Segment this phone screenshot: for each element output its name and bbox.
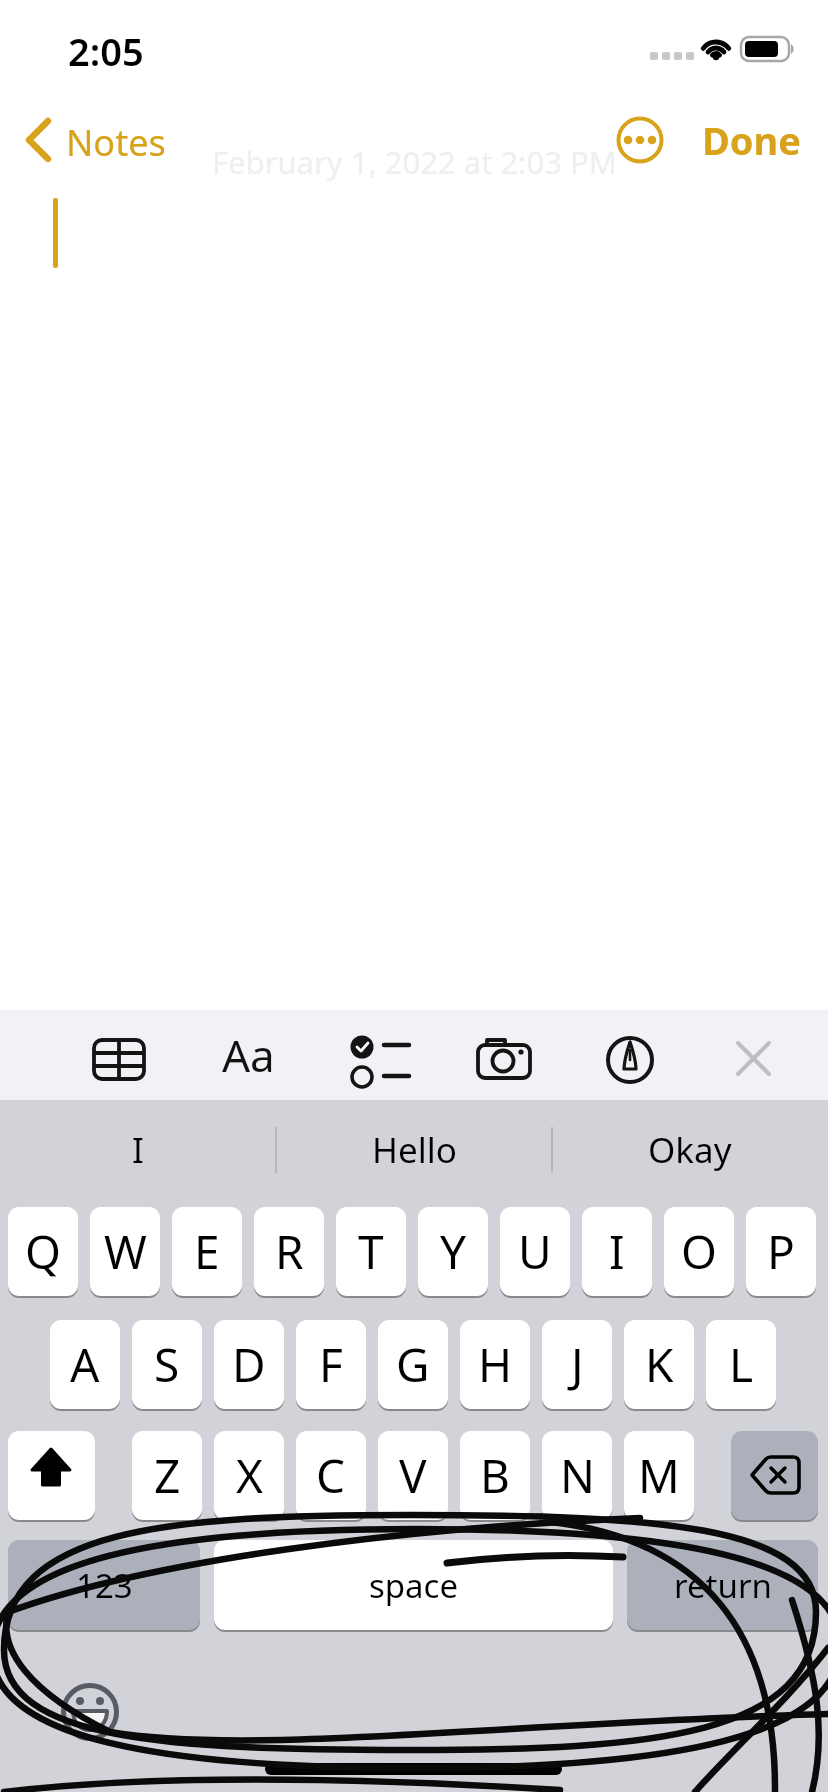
button[interactable]: return [627,1540,818,1630]
staticText: P [767,1220,795,1283]
button[interactable]: L [706,1320,776,1409]
button[interactable] [726,1020,782,1090]
staticText: O [681,1220,717,1283]
button[interactable]: Aa [198,1020,298,1090]
staticText: J [571,1333,584,1396]
staticText: G [396,1333,430,1396]
staticText: U [518,1220,552,1283]
staticText: K [645,1333,674,1396]
button[interactable]: F [296,1320,366,1409]
button[interactable]: W [90,1207,160,1296]
button[interactable] [340,1020,420,1090]
staticText: C [316,1444,346,1507]
button[interactable]: Q [8,1207,78,1296]
button[interactable]: V [378,1431,448,1520]
button[interactable]: K [624,1320,694,1409]
staticText: S [154,1333,180,1396]
staticText: 123 [76,1563,133,1608]
staticText: Hello [372,1126,457,1174]
staticText: Notes [66,118,166,167]
button[interactable] [731,1431,818,1520]
button[interactable]: Hello [276,1104,552,1196]
button[interactable]: Done [696,112,806,168]
button[interactable]: Notes [20,112,170,168]
button[interactable]: U [500,1207,570,1296]
staticText: space [369,1563,459,1608]
staticText: T [358,1220,384,1283]
staticText: Z [154,1444,181,1507]
staticText: V [399,1444,427,1507]
staticText: L [729,1333,754,1396]
button[interactable]: I [0,1104,276,1196]
staticText: Y [440,1220,467,1283]
button[interactable]: R [254,1207,324,1296]
staticText: W [104,1220,147,1283]
button[interactable] [80,1020,156,1090]
staticText: E [194,1220,220,1283]
button[interactable]: 123 [8,1540,200,1630]
staticText: B [480,1444,510,1507]
staticText: Aa [222,1025,275,1085]
staticText: Q [25,1220,61,1283]
button[interactable]: A [50,1320,120,1409]
button[interactable]: N [542,1431,612,1520]
staticText: Done [702,114,801,166]
staticText: I [132,1126,144,1174]
button[interactable]: G [378,1320,448,1409]
button[interactable]: C [296,1431,366,1520]
button[interactable]: Z [132,1431,202,1520]
button[interactable]: J [542,1320,612,1409]
staticText: M [638,1444,680,1507]
button[interactable]: H [460,1320,530,1409]
button[interactable]: X [214,1431,284,1520]
button[interactable]: E [172,1207,242,1296]
button[interactable] [466,1020,542,1090]
button[interactable]: D [214,1320,284,1409]
staticText: D [232,1333,266,1396]
button[interactable] [8,1431,95,1520]
button[interactable]: T [336,1207,406,1296]
button[interactable]: M [624,1431,694,1520]
staticText: return [674,1563,772,1608]
button[interactable] [616,116,664,164]
button[interactable] [596,1020,666,1090]
staticText: X [236,1444,263,1507]
staticText: F [319,1333,343,1396]
staticText: Okay [648,1126,732,1174]
staticText: R [275,1220,304,1283]
button[interactable]: Y [418,1207,488,1296]
button[interactable]: S [132,1320,202,1409]
button[interactable]: P [746,1207,816,1296]
staticText: February 1, 2022 at 2:03 PM [212,141,617,181]
staticText: 2:05 [68,25,144,77]
button[interactable]: space [214,1540,613,1630]
staticText: I [609,1220,625,1283]
staticText: A [70,1333,100,1396]
staticText: H [478,1333,513,1396]
button[interactable]: I [582,1207,652,1296]
button[interactable]: O [664,1207,734,1296]
staticText: N [560,1444,595,1507]
button[interactable]: Okay [552,1104,828,1196]
button[interactable]: B [460,1431,530,1520]
